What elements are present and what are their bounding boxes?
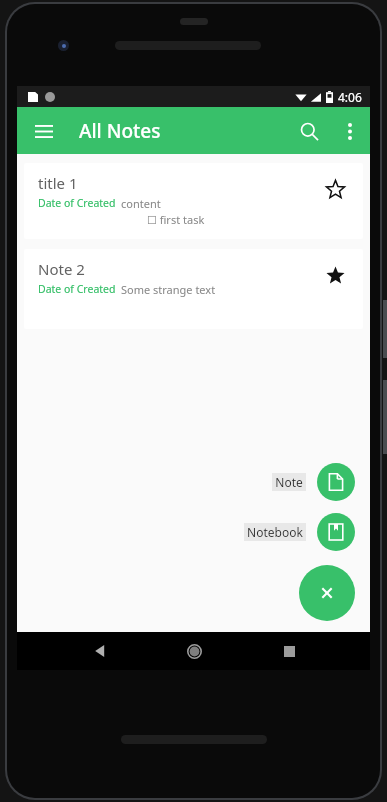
button[interactable]: Add to favourites: [321, 175, 349, 203]
button[interactable]: Note: [272, 473, 306, 491]
button[interactable]: Home: [178, 635, 210, 667]
staticText: ☐ first task: [147, 212, 205, 227]
button[interactable]: Search: [288, 110, 330, 152]
staticText: Date of Created: [38, 282, 116, 296]
staticText: content: [121, 196, 161, 211]
staticText: 4:06: [338, 89, 362, 105]
staticText: All Notes: [79, 118, 161, 144]
staticText: Date of Created: [38, 196, 116, 210]
button[interactable]: Open navigation drawer: [25, 112, 63, 150]
staticText: title 1: [38, 173, 78, 193]
button[interactable]: title 1: [24, 163, 363, 239]
button[interactable]: Recent apps: [274, 636, 304, 666]
staticText: Some strange text: [121, 282, 216, 297]
staticText: Notebook: [247, 524, 303, 540]
button[interactable]: Note 2: [24, 249, 363, 329]
button[interactable]: Notebook: [244, 523, 306, 541]
button[interactable]: Notebook: [317, 513, 355, 551]
button[interactable]: Note: [317, 463, 355, 501]
button[interactable]: Close menu: [299, 565, 355, 621]
button[interactable]: Back: [85, 636, 115, 666]
staticText: Note: [275, 474, 303, 490]
button[interactable]: More options: [330, 111, 370, 151]
button[interactable]: Remove from favourites: [321, 261, 349, 289]
staticText: Note 2: [38, 259, 85, 279]
